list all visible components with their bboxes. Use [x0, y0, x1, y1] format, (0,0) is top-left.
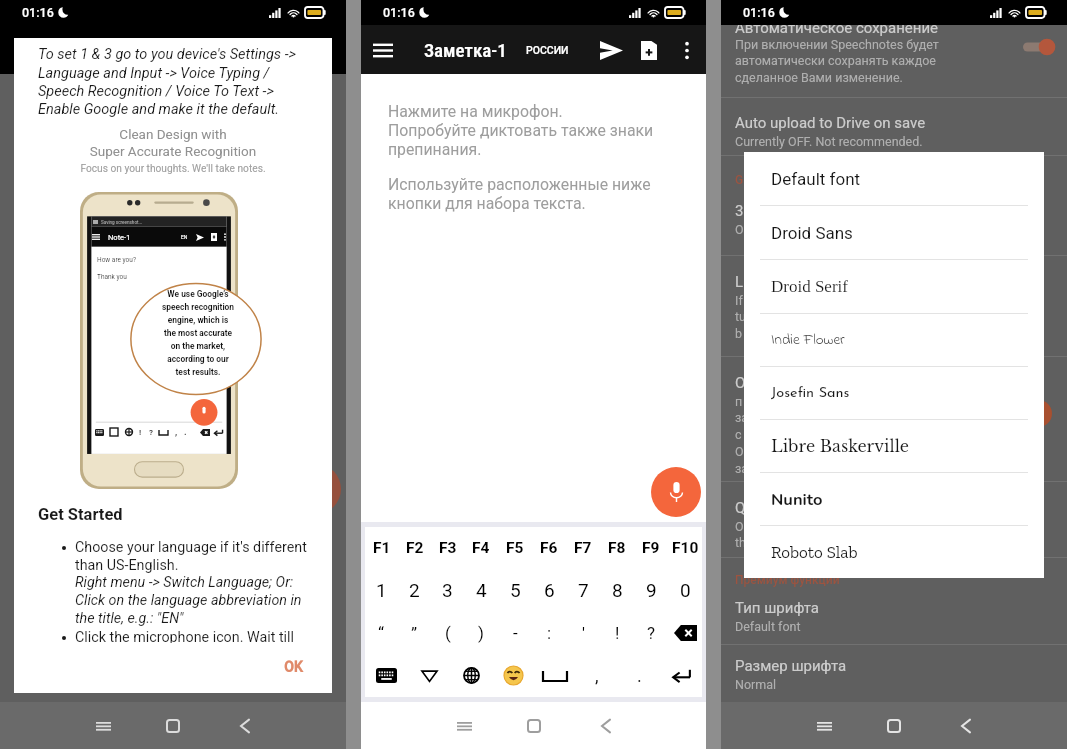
- staticText: ': [582, 623, 585, 643]
- button[interactable]: 1: [365, 569, 398, 611]
- button[interactable]: Back: [225, 706, 265, 746]
- button[interactable]: Home: [874, 706, 914, 746]
- button[interactable]: 3: [431, 569, 464, 611]
- staticText: Clean Design with Super Accurate Recogni…: [14, 126, 332, 160]
- staticText: Libre Baskerville: [771, 436, 910, 456]
- button[interactable]: Автоматическое сохранение: [721, 25, 1067, 97]
- button[interactable]: Enter: [660, 654, 702, 697]
- button[interactable]: Recents: [804, 706, 844, 746]
- button[interactable]: F10: [668, 527, 702, 569]
- button[interactable]: Send: [592, 31, 630, 69]
- button[interactable]: Recents: [444, 706, 484, 746]
- staticText: 4: [476, 579, 487, 601]
- staticText: Get Started: [38, 505, 123, 524]
- button[interactable]: ): [464, 611, 498, 654]
- button[interactable]: 5: [498, 569, 532, 611]
- button[interactable]: 4: [464, 569, 498, 611]
- button[interactable]: -: [498, 611, 532, 654]
- button[interactable]: “: [365, 611, 398, 654]
- button[interactable]: .: [618, 654, 660, 697]
- staticText: Q: [735, 499, 746, 517]
- button[interactable]: Emoji: [492, 654, 534, 697]
- button[interactable]: OK: [274, 653, 313, 681]
- button[interactable]: Home: [514, 706, 554, 746]
- staticText: .: [184, 427, 187, 437]
- button[interactable]: Hide keyboard: [408, 654, 450, 697]
- button[interactable]: L: [721, 256, 1067, 356]
- button[interactable]: F1: [365, 527, 398, 569]
- button[interactable]: Recents: [83, 706, 123, 746]
- staticText: Indie Flower: [771, 329, 845, 351]
- button[interactable]: 0: [668, 569, 702, 611]
- button[interactable]: Space: [534, 654, 576, 697]
- button[interactable]: Droid Serif: [744, 260, 1044, 313]
- button[interactable]: 9: [634, 569, 668, 611]
- staticText: Roboto Slab: [771, 542, 858, 562]
- button[interactable]: F4: [464, 527, 498, 569]
- button[interactable]: Roboto Slab: [744, 526, 1044, 578]
- button[interactable]: Home: [153, 706, 193, 746]
- staticText: Click the microphone icon. Wait till: [75, 629, 295, 643]
- button[interactable]: F2: [398, 527, 431, 569]
- button[interactable]: Default font: [744, 152, 1044, 205]
- button[interactable]: F7: [566, 527, 600, 569]
- button[interactable]: 2: [398, 569, 431, 611]
- button[interactable]: F6: [532, 527, 566, 569]
- staticText: п за с О за: [735, 394, 749, 476]
- button[interactable]: Libre Baskerville: [744, 420, 1044, 472]
- button[interactable]: ': [566, 611, 600, 654]
- staticText: Автоматическое сохранение: [735, 19, 939, 37]
- staticText: :: [547, 623, 552, 643]
- button[interactable]: Microphone: [651, 467, 701, 517]
- button[interactable]: Back: [946, 706, 986, 746]
- button[interactable]: ”: [398, 611, 431, 654]
- button[interactable]: Auto upload to Drive on save: [721, 98, 1067, 155]
- staticText: 1: [376, 579, 387, 601]
- button[interactable]: РОССИИ: [523, 41, 572, 59]
- button[interactable]: More options: [668, 31, 706, 69]
- staticText: 6: [544, 579, 555, 601]
- button[interactable]: F9: [634, 527, 668, 569]
- button[interactable]: 8: [600, 569, 634, 611]
- staticText: “: [378, 623, 385, 643]
- button[interactable]: F3: [431, 527, 464, 569]
- button[interactable]: !: [600, 611, 634, 654]
- button[interactable]: Menu: [361, 28, 405, 72]
- staticText: Размер шрифта: [735, 657, 847, 675]
- button[interactable]: Q: [721, 482, 1067, 557]
- button[interactable]: Josefin Sans: [744, 367, 1044, 419]
- staticText: EN: [181, 234, 188, 240]
- button[interactable]: Indie Flower: [744, 314, 1044, 366]
- button[interactable]: :: [532, 611, 566, 654]
- staticText: F6: [540, 539, 558, 557]
- button[interactable]: Тип шрифта: [721, 587, 1067, 644]
- staticText: Thank you: [97, 273, 127, 281]
- staticText: Заметка-1: [424, 39, 507, 61]
- button[interactable]: Droid Sans: [744, 206, 1044, 259]
- staticText: F1: [373, 539, 391, 557]
- staticText: 7: [578, 579, 589, 601]
- button[interactable]: F8: [600, 527, 634, 569]
- button[interactable]: Nunito: [744, 473, 1044, 525]
- button[interactable]: (: [431, 611, 464, 654]
- staticText: O: [735, 374, 746, 392]
- button[interactable]: O: [721, 357, 1067, 481]
- staticText: Droid Serif: [771, 277, 848, 296]
- button[interactable]: ,: [576, 654, 618, 697]
- button[interactable]: ?: [634, 611, 668, 654]
- button[interactable]: F5: [498, 527, 532, 569]
- button[interactable]: 3: [721, 185, 1067, 255]
- button[interactable]: 7: [566, 569, 600, 611]
- staticText: Normal: [735, 677, 777, 692]
- staticText: F2: [406, 539, 424, 557]
- staticText: Josefin Sans: [771, 386, 850, 401]
- button[interactable]: Back: [586, 706, 626, 746]
- button[interactable]: [668, 611, 702, 654]
- button[interactable]: Keyboard: [365, 654, 408, 697]
- button[interactable]: New note: [630, 31, 668, 69]
- button[interactable]: 6: [532, 569, 566, 611]
- button[interactable]: Размер шрифта: [721, 645, 1067, 702]
- staticText: 3: [735, 202, 744, 220]
- button[interactable]: Language: [450, 654, 492, 697]
- staticText: Right menu -> Switch Language; Or: Click…: [75, 574, 302, 627]
